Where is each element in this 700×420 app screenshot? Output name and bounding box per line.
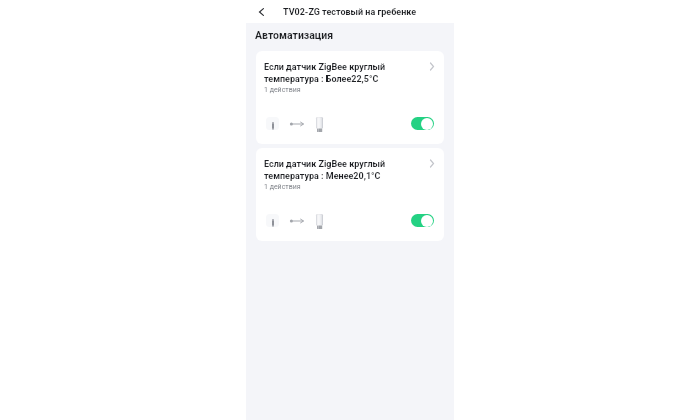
button[interactable]: Если датчик ZigBee круглый [256,51,444,144]
button[interactable]: Enable automation [411,117,434,130]
button[interactable]: Open automation details [425,157,438,170]
button[interactable]: Open automation details [425,60,438,73]
staticText: Если датчик ZigBee круглый [264,159,386,170]
button[interactable]: Back [253,5,267,19]
staticText: Автоматизация [255,29,334,41]
button[interactable]: Enable automation [411,214,434,227]
staticText: температура : Менее20,1°C [264,171,381,182]
staticText: 1 действия [264,183,301,191]
staticText: температура : Более22,5°C [264,74,379,85]
staticText: TV02-ZG тестовый на гребенке [283,7,417,18]
staticText: 1 действия [264,86,301,94]
staticText: Если датчик ZigBee круглый [264,62,386,73]
button[interactable]: Если датчик ZigBee круглый [256,148,444,241]
